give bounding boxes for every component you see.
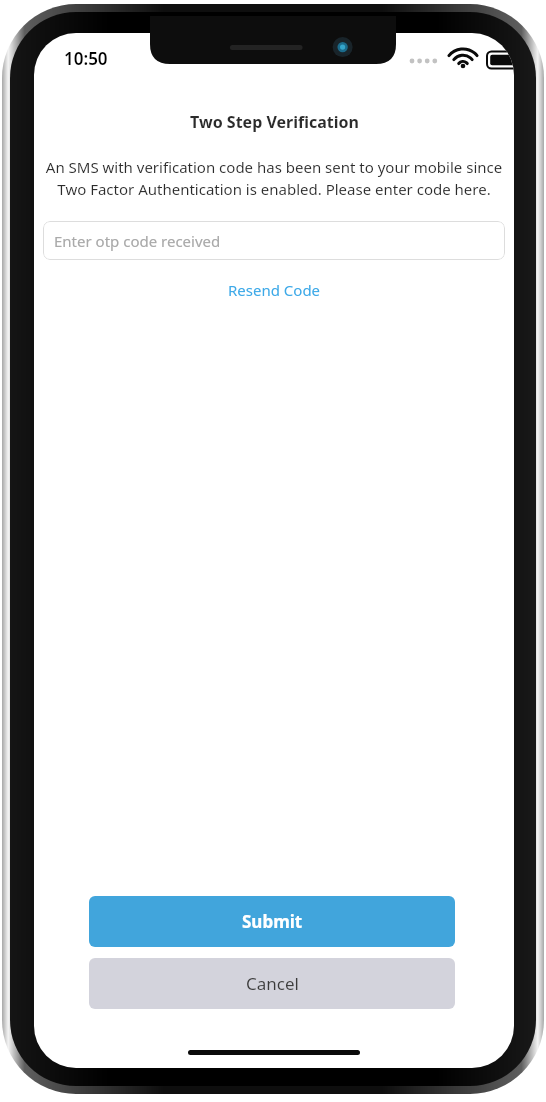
staticText: Enter otp code received: [54, 231, 221, 251]
button[interactable]: Cancel: [89, 958, 455, 1009]
staticText: Two Step Verification: [190, 111, 359, 133]
button[interactable]: Submit: [89, 896, 455, 947]
staticText: 10:50: [64, 47, 108, 70]
button[interactable]: Enter otp code received: [43, 221, 505, 260]
staticText: An SMS with verification code has been s…: [44, 157, 504, 200]
other: Signal, Wi-Fi and battery status: [406, 49, 496, 71]
staticText: Cancel: [246, 972, 299, 995]
staticText: Resend Code: [228, 280, 321, 300]
button[interactable]: Resend Code: [220, 277, 329, 303]
staticText: Submit: [242, 910, 303, 933]
